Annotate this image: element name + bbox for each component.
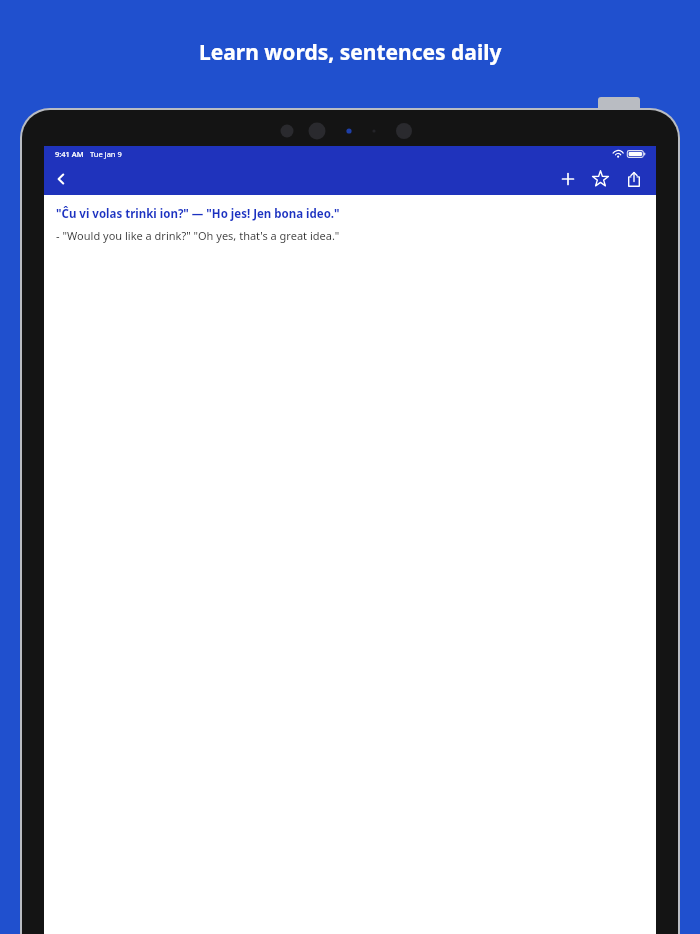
button[interactable]: Share (617, 162, 650, 195)
staticText: - "Would you like a drink?" "Oh yes, tha… (56, 228, 340, 243)
button[interactable]: Add (551, 162, 584, 195)
staticText: 9:41 AM (55, 149, 84, 159)
button[interactable]: Favorite (584, 162, 617, 195)
staticText: "Ĉu vi volas trinki ion?" — "Ho jes! Jen… (56, 206, 340, 222)
button[interactable]: Back (44, 162, 78, 195)
staticText: Tue Jan 9 (90, 149, 122, 159)
staticText: Learn words, sentences daily (199, 38, 502, 67)
